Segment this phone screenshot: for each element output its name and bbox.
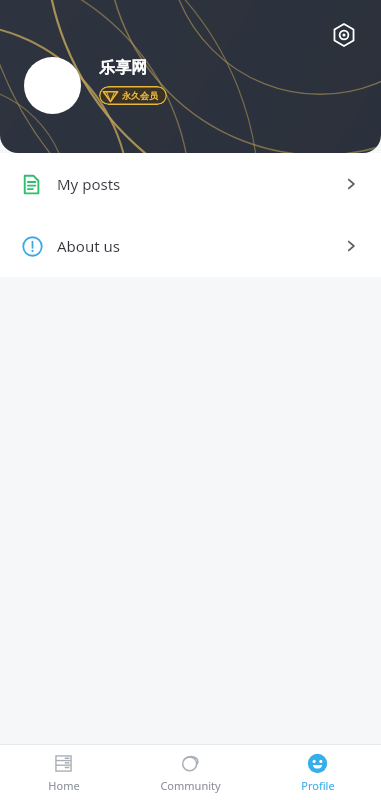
staticText: About us — [57, 236, 343, 256]
button[interactable]: Settings — [327, 18, 361, 52]
button[interactable]: 永久会员 — [99, 86, 167, 105]
staticText: Community — [160, 778, 221, 793]
staticText: 乐享网 — [99, 58, 147, 78]
button[interactable]: Community — [127, 745, 254, 800]
button[interactable]: Avatar — [24, 57, 81, 114]
button[interactable]: Profile — [254, 745, 381, 800]
button[interactable]: My posts — [0, 153, 381, 215]
button[interactable]: About us — [0, 215, 381, 277]
staticText: Profile — [301, 778, 335, 793]
staticText: My posts — [57, 174, 343, 194]
staticText: Home — [48, 778, 80, 793]
button[interactable]: Home — [0, 745, 127, 800]
staticText: 永久会员 — [122, 90, 158, 101]
